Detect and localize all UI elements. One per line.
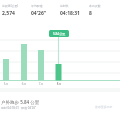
staticText: 8 — [89, 10, 119, 17]
staticText: 户外跑步 5.84 公里 — [1, 99, 40, 105]
staticText: 总时长 — [60, 4, 90, 8]
staticText: 04'26" — [31, 10, 61, 17]
button[interactable]: 5.84公里 — [49, 30, 69, 37]
staticText: 7月 — [35, 82, 47, 86]
button[interactable]: 户外跑步 5.84 公里 — [1, 99, 118, 110]
staticText: 平均配速 — [31, 4, 61, 8]
staticText: 2,574 — [2, 10, 32, 17]
staticText: 6月 — [18, 82, 30, 86]
staticText: 04:18:31 — [60, 10, 90, 17]
staticText: 5月 — [0, 82, 12, 86]
staticText: 总距离(公里) — [2, 4, 32, 8]
staticText: 本月次数 — [89, 4, 119, 8]
staticText: 用时 04:18:31 配速 04'26" — [1, 106, 37, 110]
staticText: 8月 — [53, 82, 65, 86]
button[interactable]: 查看更多记录 — [95, 105, 113, 109]
staticText: 5.84公里 — [53, 32, 66, 36]
